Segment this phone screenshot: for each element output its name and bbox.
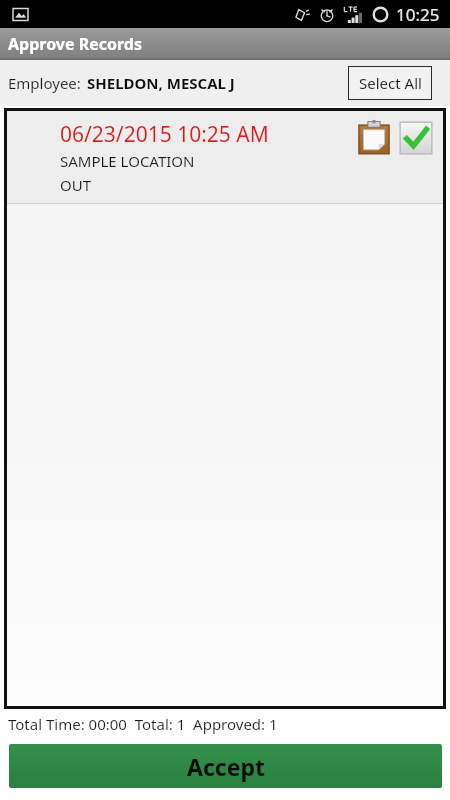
staticText: Approve Records (8, 33, 142, 55)
staticText: Accept (187, 751, 265, 782)
staticText: Select All (359, 73, 422, 93)
button[interactable]: Accept (9, 744, 442, 788)
staticText: Total Time: 00:00 Total: 1 Approved: 1 (8, 714, 278, 734)
staticText: SAMPLE LOCATION (60, 151, 195, 171)
staticText: 06/23/2015 10:25 AM (60, 120, 269, 149)
staticText: 10:25 (396, 3, 440, 26)
button[interactable]: 06/23/2015 10:25 AM (7, 111, 443, 203)
button[interactable]: Approved (396, 118, 436, 158)
staticText: Employee: (8, 73, 81, 93)
button[interactable]: View notes (355, 119, 393, 157)
button[interactable]: Select All (348, 66, 432, 100)
staticText: OUT (60, 175, 92, 195)
staticText: SHELDON, MESCAL J (87, 73, 235, 93)
